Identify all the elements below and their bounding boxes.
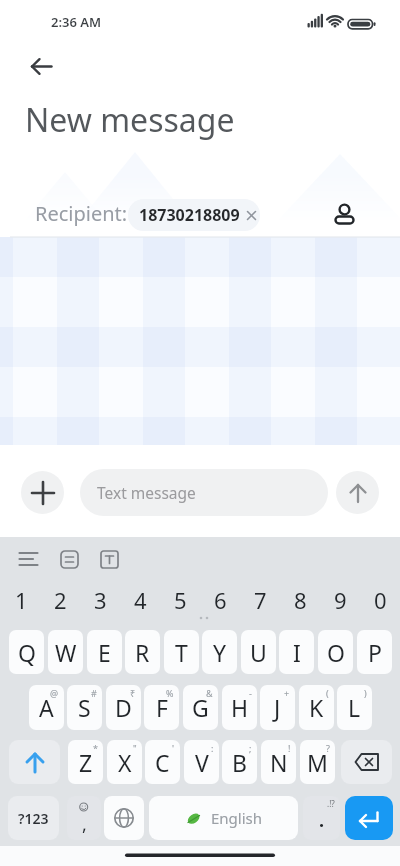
staticText: # — [91, 687, 97, 699]
staticText: 1 — [15, 585, 28, 615]
button[interactable]: .!? — [303, 796, 340, 840]
staticText: B — [232, 747, 247, 778]
button[interactable]: E — [87, 630, 122, 674]
button[interactable]: Text message — [80, 469, 328, 516]
staticText: W — [55, 637, 77, 668]
button[interactable] — [336, 471, 379, 514]
staticText: T — [175, 637, 188, 668]
button[interactable]: V — [184, 740, 219, 784]
staticText: Recipient: — [35, 200, 128, 227]
staticText: ) — [364, 687, 367, 699]
staticText: % — [166, 687, 174, 699]
staticText: @ — [50, 687, 59, 699]
button[interactable]: 5 — [160, 583, 200, 617]
staticText: M — [307, 747, 328, 778]
staticText: 7 — [254, 585, 267, 615]
staticText: . — [319, 808, 325, 833]
button[interactable]: N — [261, 740, 296, 784]
button[interactable]: Z — [68, 740, 103, 784]
staticText: " — [133, 742, 137, 754]
button[interactable] — [12, 544, 45, 575]
staticText: ?123 — [18, 809, 49, 828]
staticText: * — [93, 742, 98, 754]
staticText: J — [274, 692, 281, 723]
button[interactable]: 4 — [120, 583, 160, 617]
staticText: L — [348, 692, 361, 723]
button[interactable]: 9 — [320, 583, 360, 617]
button[interactable] — [345, 796, 393, 840]
staticText: ( — [326, 687, 329, 699]
button[interactable]: S — [67, 685, 102, 730]
staticText: Z — [79, 747, 93, 778]
staticText: 4 — [134, 585, 147, 615]
staticText: ₹ — [130, 687, 136, 699]
staticText: I — [293, 637, 301, 668]
staticText: 9 — [334, 585, 347, 615]
button[interactable]: L — [337, 685, 372, 730]
staticText: , — [82, 812, 87, 837]
button[interactable]: 7 — [240, 583, 280, 617]
staticText: Text message — [97, 482, 196, 503]
button[interactable]: J — [260, 685, 295, 730]
staticText: : — [211, 742, 214, 754]
button[interactable] — [22, 54, 62, 80]
button[interactable] — [341, 740, 392, 784]
button[interactable]: 1 — [1, 583, 41, 617]
button[interactable]: 0 — [360, 583, 400, 617]
button[interactable]: ?123 — [8, 796, 59, 840]
staticText: ? — [326, 742, 330, 754]
button[interactable]: U — [241, 630, 276, 674]
staticText: - — [249, 687, 252, 699]
button[interactable]: 3 — [80, 583, 120, 617]
staticText: V — [195, 747, 209, 778]
staticText: S — [78, 692, 91, 723]
button[interactable]: K — [299, 685, 334, 730]
button[interactable]: 6 — [200, 583, 240, 617]
button[interactable]: I — [279, 630, 314, 674]
button[interactable]: O — [318, 630, 353, 674]
staticText: D — [115, 692, 132, 723]
button[interactable]: Q — [9, 630, 44, 674]
button[interactable]: D — [106, 685, 141, 730]
button[interactable]: Y — [202, 630, 237, 674]
button[interactable]: F — [144, 685, 179, 730]
button[interactable] — [104, 796, 144, 840]
button[interactable]: T — [164, 630, 199, 674]
staticText: E — [98, 637, 111, 668]
button[interactable] — [95, 544, 125, 575]
staticText: N — [270, 747, 288, 778]
button[interactable]: 18730218809 — [128, 199, 260, 231]
button[interactable]: 8 — [280, 583, 320, 617]
button[interactable]: P — [357, 630, 392, 674]
button[interactable] — [21, 471, 64, 514]
button[interactable]: A — [29, 685, 64, 730]
staticText: ; — [249, 742, 252, 754]
staticText: A — [39, 692, 54, 723]
staticText: English — [211, 808, 263, 828]
button[interactable] — [330, 196, 359, 228]
button[interactable]: C — [145, 740, 180, 784]
button[interactable] — [55, 544, 85, 575]
staticText: P — [368, 637, 382, 668]
staticText: + — [284, 687, 290, 699]
staticText: C — [155, 747, 170, 778]
button[interactable]: G — [183, 685, 218, 730]
staticText: ! — [288, 742, 291, 754]
staticText: 2:36 AM — [51, 13, 102, 31]
button[interactable]: , — [67, 796, 101, 840]
staticText: .!? — [327, 798, 335, 809]
button[interactable]: English — [149, 796, 298, 840]
staticText: New message — [25, 98, 235, 142]
button[interactable]: W — [48, 630, 83, 674]
button[interactable]: X — [107, 740, 142, 784]
button[interactable]: H — [222, 685, 257, 730]
staticText: 0 — [374, 585, 387, 615]
button[interactable]: 2 — [40, 583, 80, 617]
staticText: ' — [172, 742, 175, 754]
staticText: Y — [213, 637, 227, 668]
staticText: R — [135, 637, 150, 668]
button[interactable]: B — [222, 740, 257, 784]
button[interactable] — [9, 740, 60, 784]
button[interactable]: R — [125, 630, 160, 674]
button[interactable]: M — [300, 740, 335, 784]
